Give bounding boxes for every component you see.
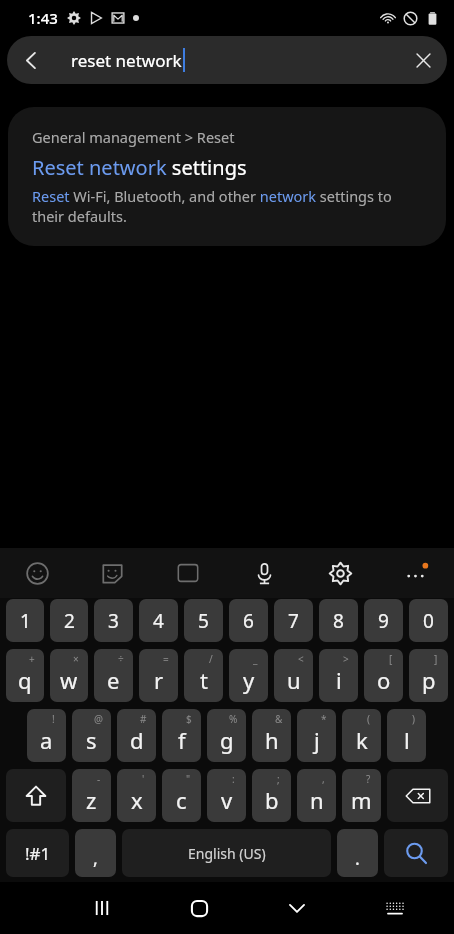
staticText: a: [40, 725, 53, 755]
staticText: k: [356, 725, 368, 755]
staticText: s: [86, 725, 97, 755]
button[interactable]: Shift: [6, 769, 66, 822]
button[interactable]: <: [274, 649, 313, 702]
staticText: Reset Wi-Fi, Bluetooth, and other networ…: [32, 186, 422, 226]
button[interactable]: _: [229, 649, 268, 702]
staticText: n: [310, 785, 324, 815]
staticText: t: [200, 665, 208, 695]
staticText: ,: [322, 772, 325, 786]
staticText: +: [29, 652, 35, 666]
button[interactable]: More options: [378, 548, 454, 598]
button[interactable]: ': [117, 769, 156, 822]
button[interactable]: >: [319, 649, 358, 702]
button[interactable]: ×: [50, 649, 88, 702]
button[interactable]: (: [342, 709, 381, 762]
button[interactable]: ,: [297, 769, 336, 822]
button[interactable]: ): [387, 709, 426, 762]
staticText: &: [275, 712, 283, 726]
staticText: 1: [20, 608, 31, 634]
button[interactable]: *: [297, 709, 336, 762]
staticText: l: [404, 725, 410, 755]
staticText: $: [186, 712, 192, 726]
button[interactable]: 1: [6, 599, 44, 642]
button[interactable]: ;: [252, 769, 291, 822]
staticText: 0: [423, 608, 434, 634]
staticText: >: [343, 652, 349, 666]
button[interactable]: Symbols: [6, 829, 69, 877]
staticText: Reset network settings: [32, 154, 247, 181]
staticText: 9: [378, 608, 389, 634]
staticText: .: [355, 846, 360, 871]
button[interactable]: 3: [94, 599, 133, 642]
button[interactable]: 6: [229, 599, 268, 642]
button[interactable]: Hide keyboard: [248, 882, 346, 934]
button[interactable]: 0: [409, 599, 448, 642]
button[interactable]: 9: [364, 599, 403, 642]
button[interactable]: &: [252, 709, 291, 762]
staticText: English (US): [188, 844, 266, 863]
staticText: ': [142, 772, 145, 786]
button[interactable]: Back: [7, 36, 55, 84]
staticText: m: [351, 785, 372, 815]
staticText: *: [321, 712, 327, 726]
staticText: u: [287, 665, 301, 695]
button[interactable]: 7: [274, 599, 313, 642]
staticText: ?: [366, 772, 371, 786]
button[interactable]: :: [207, 769, 246, 822]
staticText: %: [229, 712, 238, 726]
button[interactable]: General management > Reset: [8, 107, 446, 246]
button[interactable]: 5: [184, 599, 223, 642]
button[interactable]: Search: [384, 829, 448, 877]
staticText: ]: [434, 652, 438, 666]
staticText: -: [97, 772, 101, 786]
staticText: ÷: [118, 652, 124, 666]
button[interactable]: @: [72, 709, 111, 762]
staticText: _: [253, 652, 258, 666]
staticText: q: [18, 665, 32, 695]
button[interactable]: English (US): [122, 829, 331, 877]
button[interactable]: !: [27, 709, 66, 762]
staticText: d: [130, 725, 144, 755]
button[interactable]: Keyboard settings: [302, 548, 378, 598]
staticText: ×: [73, 652, 79, 666]
staticText: i: [336, 665, 342, 695]
button[interactable]: [: [364, 649, 403, 702]
staticText: r: [154, 665, 164, 695]
button[interactable]: Clear search: [399, 36, 447, 84]
button[interactable]: .: [337, 829, 378, 877]
staticText: w: [60, 665, 78, 695]
staticText: ;: [277, 772, 280, 786]
button[interactable]: Emoji: [0, 548, 75, 598]
button[interactable]: ,: [75, 829, 116, 877]
button[interactable]: Home: [150, 882, 248, 934]
button[interactable]: Backspace: [387, 769, 448, 822]
button[interactable]: #: [117, 709, 156, 762]
staticText: 1:43: [28, 8, 58, 28]
button[interactable]: Stickers: [75, 548, 150, 598]
button[interactable]: Switch keyboard: [346, 882, 444, 934]
staticText: ,: [93, 846, 98, 871]
button[interactable]: +: [6, 649, 44, 702]
button[interactable]: Recents: [53, 882, 150, 934]
button[interactable]: /: [184, 649, 223, 702]
button[interactable]: ÷: [94, 649, 133, 702]
button[interactable]: 4: [139, 599, 178, 642]
button[interactable]: $: [162, 709, 201, 762]
staticText: reset network: [71, 49, 182, 72]
button[interactable]: %: [207, 709, 246, 762]
staticText: b: [265, 785, 279, 815]
button[interactable]: Voice input: [226, 548, 302, 598]
button[interactable]: ": [162, 769, 201, 822]
button[interactable]: ?: [342, 769, 381, 822]
button[interactable]: ]: [409, 649, 448, 702]
button[interactable]: =: [139, 649, 178, 702]
staticText: #: [140, 712, 147, 726]
staticText: =: [163, 652, 169, 666]
button[interactable]: 8: [319, 599, 358, 642]
staticText: f: [178, 725, 186, 755]
staticText: 6: [243, 608, 254, 634]
button[interactable]: -: [72, 769, 111, 822]
button[interactable]: 2: [50, 599, 88, 642]
staticText: 5: [198, 608, 209, 634]
button[interactable]: GIF: [150, 548, 226, 598]
